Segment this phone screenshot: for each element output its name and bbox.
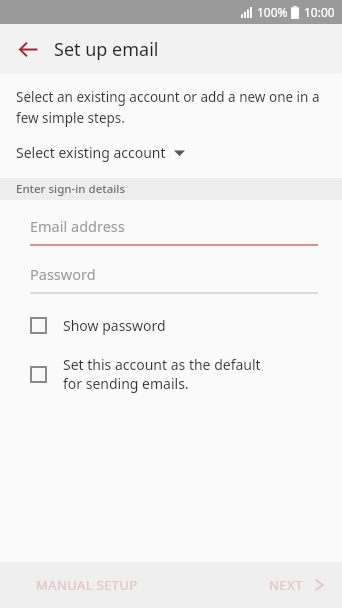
staticText: MANUAL SETUP <box>36 576 138 594</box>
staticText: Set this account as the default for send… <box>63 355 261 393</box>
staticText: NEXT <box>269 576 303 594</box>
button[interactable]: NEXT <box>253 566 342 604</box>
staticText: Select an existing account or add a new … <box>16 88 322 127</box>
staticText: Show password <box>63 316 166 335</box>
button[interactable]: Select existing account <box>0 141 342 168</box>
button[interactable]: Password <box>0 264 342 294</box>
button[interactable]: Set this account as the default for send… <box>0 349 342 399</box>
staticText: Set up email <box>54 37 159 62</box>
button[interactable]: Show password <box>0 310 342 341</box>
staticText: Select existing account <box>16 143 166 162</box>
staticText: 10:00 <box>304 4 335 20</box>
staticText: Password <box>30 264 96 284</box>
button[interactable]: Back <box>14 35 42 63</box>
staticText: Enter sign-in details <box>16 181 126 197</box>
staticText: 100% <box>257 4 288 20</box>
button[interactable]: MANUAL SETUP <box>0 566 154 604</box>
staticText: Email address <box>30 216 125 236</box>
button[interactable]: Email address <box>0 216 342 246</box>
